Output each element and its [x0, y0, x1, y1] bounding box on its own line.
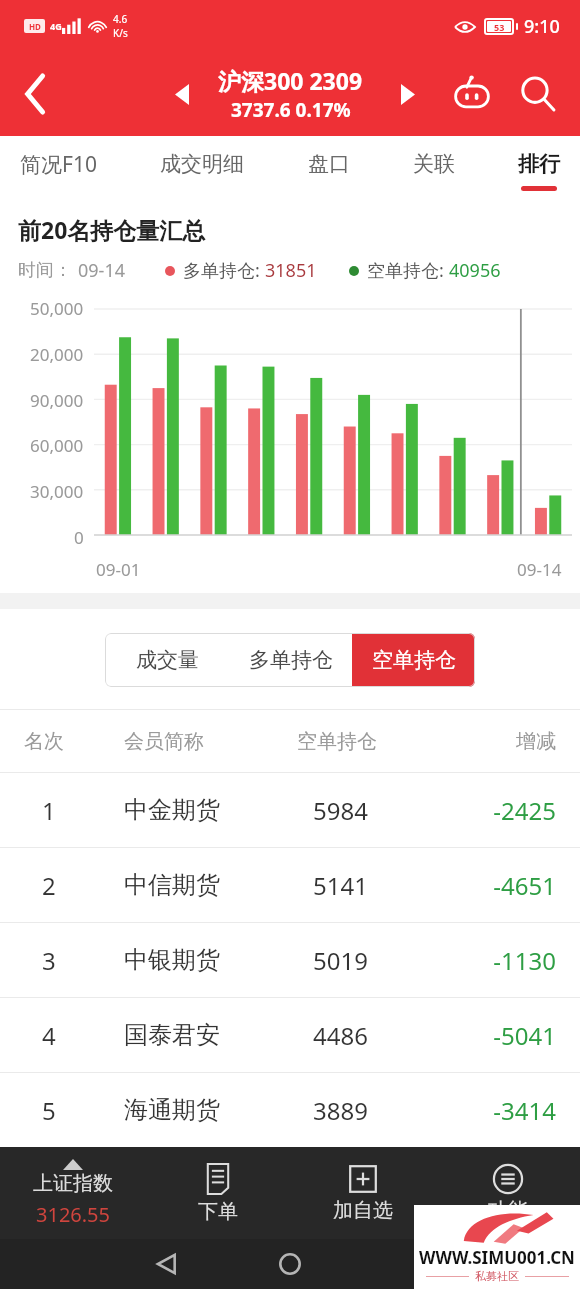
staticText: 多单持仓: [249, 647, 333, 673]
staticText: WWW.SIMU001.CN: [419, 1246, 575, 1269]
button[interactable]: Home: [263, 1239, 317, 1289]
staticText: 2: [42, 869, 124, 902]
staticText: 3737.6 0.17%: [231, 97, 351, 123]
staticText: 中银期货: [124, 945, 297, 975]
staticText: 4486: [313, 1019, 450, 1052]
button[interactable]: 多单持仓: [229, 633, 352, 687]
button[interactable]: Back: [0, 58, 72, 130]
staticText: -3414: [450, 1094, 556, 1127]
staticText: 关联: [413, 151, 455, 177]
staticText: 功能: [488, 1198, 528, 1223]
staticText: 多单持仓:: [183, 258, 265, 283]
button[interactable]: 成交明细: [160, 136, 244, 200]
button[interactable]: Assistant robot: [444, 66, 500, 122]
staticText: 盘口: [308, 151, 350, 177]
button[interactable]: 空单持仓: [352, 633, 475, 687]
staticText: -4651: [450, 869, 556, 902]
staticText: 简况F10: [20, 150, 97, 179]
staticText: -1130: [450, 944, 556, 977]
staticText: 5019: [313, 944, 450, 977]
staticText: 90,000: [30, 389, 84, 412]
button[interactable]: 盘口: [308, 136, 350, 200]
staticText: 5141: [313, 869, 450, 902]
button[interactable]: 2: [0, 848, 580, 922]
button[interactable]: 1: [0, 773, 580, 847]
staticText: 前20名持仓量汇总: [18, 214, 206, 245]
staticText: 4G: [50, 20, 62, 32]
staticText: 空单持仓: [297, 729, 450, 754]
staticText: 20,000: [30, 343, 84, 366]
staticText: 私募社区: [475, 1269, 519, 1283]
staticText: 中金期货: [124, 795, 297, 825]
staticText: K/s: [113, 26, 128, 40]
staticText: 50,000: [30, 297, 84, 320]
staticText: 时间：: [18, 259, 72, 282]
staticText: 会员简称: [124, 729, 297, 754]
button[interactable]: 功能: [435, 1147, 580, 1239]
button[interactable]: Previous contract: [158, 70, 206, 118]
button[interactable]: 3: [0, 923, 580, 997]
staticText: 5: [42, 1094, 124, 1127]
staticText: 中信期货: [124, 870, 297, 900]
staticText: 国泰君安: [124, 1020, 297, 1050]
staticText: -2425: [450, 794, 556, 827]
staticText: 3: [42, 944, 124, 977]
staticText: 5984: [313, 794, 450, 827]
staticText: 加自选: [333, 1198, 393, 1223]
staticText: 30,000: [30, 480, 84, 503]
button[interactable]: 排行: [518, 136, 560, 200]
staticText: 09-01: [96, 558, 141, 581]
staticText: 3126.55: [36, 1201, 110, 1228]
staticText: 09-14: [517, 558, 562, 581]
staticText: 4.6: [113, 12, 128, 26]
staticText: 排行: [518, 151, 560, 177]
button[interactable]: Back: [140, 1239, 194, 1289]
button[interactable]: Search: [508, 64, 568, 124]
staticText: 成交量: [136, 647, 199, 673]
button[interactable]: 关联: [413, 136, 455, 200]
staticText: 53: [494, 21, 505, 32]
staticText: 31851: [265, 258, 317, 283]
button[interactable]: 4: [0, 998, 580, 1072]
staticText: 4: [42, 1019, 124, 1052]
staticText: 沪深300 2309: [218, 65, 363, 96]
staticText: HD: [29, 21, 41, 32]
staticText: 上证指数: [33, 1171, 113, 1196]
button[interactable]: 成交量: [105, 633, 229, 687]
staticText: 1: [42, 794, 124, 827]
button[interactable]: Next contract: [384, 70, 432, 118]
button[interactable]: 简况F10: [20, 136, 97, 200]
staticText: 0: [74, 526, 84, 549]
staticText: -5041: [450, 1019, 556, 1052]
staticText: 9:10: [524, 14, 560, 39]
staticText: 成交明细: [160, 151, 244, 177]
staticText: 下单: [198, 1199, 238, 1224]
staticText: 空单持仓:: [367, 258, 449, 283]
staticText: 增减: [450, 729, 556, 754]
staticText: 名次: [24, 729, 124, 754]
staticText: 40956: [449, 258, 501, 283]
staticText: 3889: [313, 1094, 450, 1127]
staticText: 空单持仓: [372, 647, 456, 673]
button[interactable]: 上证指数: [0, 1147, 145, 1239]
staticText: 09-14: [78, 258, 125, 283]
button[interactable]: 加自选: [290, 1147, 435, 1239]
staticText: 海通期货: [124, 1095, 297, 1125]
button[interactable]: 下单: [145, 1147, 290, 1239]
button[interactable]: 5: [0, 1073, 580, 1147]
staticText: 60,000: [30, 434, 84, 457]
